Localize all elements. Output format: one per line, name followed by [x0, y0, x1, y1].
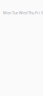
staticText: Mon Tue Wed Thu Fri Sat	[3, 10, 43, 15]
